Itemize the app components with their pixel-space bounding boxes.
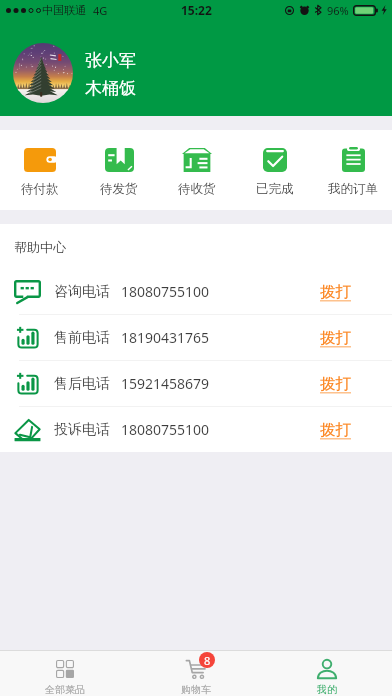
button[interactable]: 待收货 [158, 137, 236, 203]
staticText: 待发货 [100, 181, 138, 197]
staticText: 18080755100 [121, 282, 210, 301]
staticText: 18080755100 [121, 420, 210, 439]
button[interactable]: 咨询电话 [0, 269, 392, 315]
button[interactable]: 我的 [261, 651, 392, 696]
staticText: 拨打 [320, 420, 351, 440]
staticText: 待付款 [21, 181, 59, 197]
staticText: 8 [204, 653, 211, 668]
button[interactable]: 全部菜品 [0, 651, 130, 696]
staticText: 售前电话 [54, 329, 110, 347]
staticText: 拨打 [320, 282, 351, 302]
button[interactable]: 售前电话 [0, 315, 392, 361]
staticText: 已完成 [256, 181, 294, 197]
button[interactable]: 待付款 [0, 137, 79, 203]
staticText: 购物车 [181, 683, 211, 696]
button[interactable]: 8 [130, 651, 261, 696]
staticText: 售后电话 [54, 375, 110, 393]
staticText: 全部菜品 [45, 683, 85, 696]
staticText: 咨询电话 [54, 283, 110, 301]
staticText: 我的订单 [328, 181, 378, 197]
staticText: 我的 [317, 683, 337, 696]
staticText: 张小军 [85, 50, 136, 71]
staticText: 中国联通 [42, 3, 86, 17]
staticText: 投诉电话 [54, 421, 110, 439]
staticText: 木桶饭 [85, 78, 136, 99]
staticText: 15:22 [181, 2, 212, 18]
button[interactable]: 待发货 [79, 137, 158, 203]
staticText: 待收货 [178, 181, 216, 197]
button[interactable]: 已完成 [236, 137, 314, 203]
staticText: 拨打 [320, 374, 351, 394]
staticText: 15921458679 [121, 374, 210, 393]
button[interactable]: 售后电话 [0, 361, 392, 407]
staticText: 帮助中心 [14, 239, 66, 255]
staticText: 18190431765 [121, 328, 210, 347]
button[interactable]: 投诉电话 [0, 407, 392, 452]
staticText: 4G [93, 3, 108, 18]
staticText: 96% [327, 3, 349, 18]
button[interactable]: 我的订单 [314, 137, 392, 203]
staticText: 拨打 [320, 328, 351, 348]
